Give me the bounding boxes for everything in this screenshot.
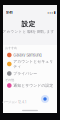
staticText: Galaxy Samsung: [13, 53, 41, 57]
button[interactable]: プライバシー: [3, 69, 57, 78]
staticText: アカウントとセキュリティ: [13, 59, 53, 69]
button[interactable]: Galaxy Samsung: [3, 50, 57, 59]
staticText: その他: [5, 78, 14, 82]
staticText: プライバシー: [13, 71, 37, 76]
staticText: ▪▪▪: [47, 10, 53, 14]
staticText: 設定: [21, 20, 35, 28]
staticText: 9:41: [6, 10, 13, 15]
staticText: バージョン 12.4.1: [2, 100, 26, 104]
button[interactable]: Compose: [41, 95, 49, 103]
staticText: ▮: [54, 10, 56, 14]
staticText: おすすめ: [5, 46, 17, 50]
staticText: アカウントと端末を管理します: [2, 29, 54, 34]
button[interactable]: 通知とサウンドの設定: [3, 81, 57, 90]
button[interactable]: アカウントとセキュリティ: [3, 59, 57, 68]
staticText: 通知とサウンドの設定: [13, 83, 53, 88]
